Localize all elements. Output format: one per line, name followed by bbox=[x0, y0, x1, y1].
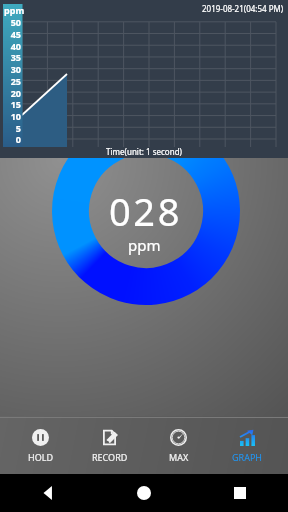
staticText: 45 bbox=[2, 28, 21, 40]
staticText: 40 bbox=[2, 40, 21, 52]
staticText: 25 bbox=[2, 75, 21, 87]
staticText: HOLD bbox=[28, 451, 53, 463]
staticText: 30 bbox=[2, 63, 21, 75]
staticText: Time(unit: 1 second) bbox=[0, 146, 288, 157]
button[interactable]: RECORD bbox=[75, 416, 144, 474]
staticText: GRAPH bbox=[232, 451, 263, 463]
staticText: 50 bbox=[2, 16, 21, 28]
button[interactable]: Back bbox=[0, 474, 96, 512]
button[interactable]: Recents bbox=[192, 474, 288, 512]
staticText: ppm bbox=[4, 4, 25, 16]
staticText: 0 bbox=[2, 133, 21, 145]
button[interactable]: HOLD bbox=[6, 416, 75, 474]
staticText: 5 bbox=[2, 122, 21, 134]
button[interactable]: Home bbox=[96, 474, 192, 512]
staticText: 20 bbox=[2, 87, 21, 99]
staticText: 35 bbox=[2, 51, 21, 63]
button[interactable]: GRAPH bbox=[213, 416, 282, 474]
staticText: 10 bbox=[2, 110, 21, 122]
staticText: MAX bbox=[169, 451, 189, 463]
button[interactable]: MAX bbox=[144, 416, 213, 474]
staticText: ppm bbox=[128, 235, 161, 255]
staticText: RECORD bbox=[92, 451, 128, 463]
staticText: 028 bbox=[109, 185, 183, 237]
staticText: 15 bbox=[2, 98, 21, 110]
staticText: 2019-08-21(04:54 PM) bbox=[202, 3, 284, 14]
